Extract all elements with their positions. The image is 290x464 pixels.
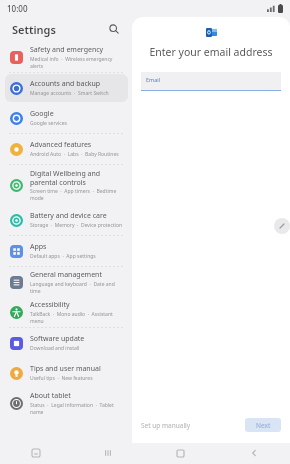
staticText: Android Auto · Labs · Baby Routines (30, 151, 119, 158)
staticText: General management (30, 270, 102, 280)
staticText: 10:00 (7, 3, 28, 14)
staticText: Default apps · App settings (30, 253, 96, 260)
button[interactable]: Email (141, 72, 281, 91)
staticText: Accounts and backup (30, 79, 101, 89)
button[interactable]: Advanced features (5, 135, 128, 163)
staticText: Medical info · Wireless emergency alerts (30, 56, 123, 69)
staticText: Set up manually (141, 421, 191, 430)
staticText: Tips and user manual (30, 364, 101, 374)
button[interactable]: Apps (5, 237, 128, 265)
button[interactable]: Accounts and backup (5, 74, 128, 102)
button[interactable]: Tips and user manual (5, 359, 128, 387)
staticText: Email (146, 76, 161, 83)
button[interactable]: Safety and emergency (5, 43, 128, 71)
button[interactable]: General management (5, 268, 128, 296)
staticText: Screen time · App timers · Bedtime mode (30, 188, 123, 201)
staticText: Apps (30, 242, 47, 252)
button[interactable]: Set up manually (141, 421, 191, 430)
staticText: Enter your email address (132, 45, 290, 59)
button[interactable]: Search (105, 20, 123, 38)
button[interactable]: Home (144, 442, 217, 464)
button[interactable]: Menu (72, 442, 144, 464)
staticText: Next (256, 421, 271, 430)
button[interactable]: Edit (274, 218, 290, 234)
button[interactable]: Back (217, 442, 290, 464)
staticText: Manage accounts · Smart Switch (30, 90, 109, 97)
staticText: Settings (12, 22, 56, 37)
staticText: Advanced features (30, 140, 92, 150)
staticText: Digital Wellbeing and parental controls (30, 169, 123, 187)
button[interactable]: Digital Wellbeing and parental controls (5, 166, 128, 204)
button[interactable]: Accessibility (5, 298, 128, 326)
staticText: Useful tips · New features (30, 375, 93, 382)
staticText: Google services (30, 120, 67, 127)
button[interactable]: Next (245, 418, 281, 432)
button[interactable]: Recents (0, 442, 72, 464)
button[interactable]: About tablet (5, 389, 128, 417)
staticText: TalkBack · Mono audio · Assistant menu (30, 311, 123, 324)
button[interactable]: Software update (5, 329, 128, 357)
staticText: Software update (30, 334, 85, 344)
button[interactable]: Google (5, 104, 128, 132)
button[interactable]: Battery and device care (5, 206, 128, 234)
staticText: Language and keyboard · Date and time (30, 281, 123, 294)
staticText: Accessibility (30, 300, 70, 310)
staticText: Safety and emergency (30, 45, 104, 55)
staticText: Status · Legal information · Tablet name (30, 402, 123, 415)
staticText: Google (30, 109, 54, 119)
staticText: Battery and device care (30, 211, 107, 221)
staticText: Download and install (30, 345, 80, 352)
staticText: Storage · Memory · Device protection (30, 222, 123, 229)
staticText: About tablet (30, 391, 71, 401)
